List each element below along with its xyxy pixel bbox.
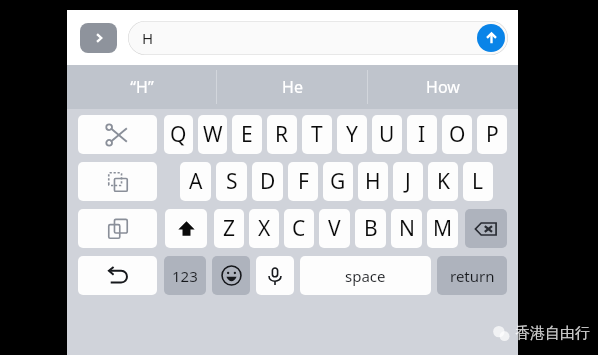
staticText: P: [486, 120, 499, 149]
staticText: 香港自由行: [515, 324, 590, 343]
button[interactable]: H: [128, 21, 508, 55]
button[interactable]: F: [288, 162, 318, 201]
button[interactable]: Backspace: [465, 209, 507, 248]
staticText: W: [203, 120, 223, 149]
button[interactable]: X: [249, 209, 279, 248]
staticText: H: [142, 28, 154, 48]
button[interactable]: L: [463, 162, 493, 201]
button[interactable]: Paste: [78, 209, 157, 248]
staticText: H: [365, 167, 381, 196]
button[interactable]: G: [323, 162, 353, 201]
button[interactable]: U: [372, 115, 402, 154]
staticText: F: [298, 167, 309, 196]
button[interactable]: Undo: [78, 256, 157, 295]
staticText: I: [418, 120, 426, 149]
staticText: A: [189, 167, 203, 196]
staticText: B: [364, 214, 378, 243]
button[interactable]: S: [216, 162, 247, 201]
staticText: L: [472, 167, 484, 196]
button[interactable]: W: [198, 115, 227, 154]
button[interactable]: V: [319, 209, 350, 248]
staticText: G: [330, 167, 346, 196]
staticText: Y: [346, 120, 358, 149]
staticText: K: [437, 167, 450, 196]
staticText: S: [226, 167, 238, 196]
staticText: E: [241, 120, 253, 149]
button[interactable]: Y: [337, 115, 367, 154]
button[interactable]: Copy: [78, 162, 157, 201]
button[interactable]: E: [232, 115, 262, 154]
staticText: N: [399, 214, 415, 243]
button[interactable]: D: [252, 162, 283, 201]
button[interactable]: Emoji: [212, 256, 250, 295]
button[interactable]: H: [358, 162, 388, 201]
button[interactable]: N: [391, 209, 422, 248]
button[interactable]: K: [428, 162, 458, 201]
button[interactable]: 123: [164, 256, 206, 295]
button[interactable]: Send: [477, 24, 505, 52]
button[interactable]: B: [355, 209, 386, 248]
button[interactable]: Cut: [78, 115, 157, 154]
button[interactable]: Dictation: [256, 256, 294, 295]
staticText: V: [328, 214, 341, 243]
button[interactable]: How: [368, 65, 518, 109]
button[interactable]: T: [302, 115, 332, 154]
button[interactable]: I: [407, 115, 437, 154]
staticText: R: [275, 120, 289, 149]
button[interactable]: R: [267, 115, 297, 154]
staticText: How: [426, 76, 460, 98]
button[interactable]: Shift: [165, 209, 207, 248]
staticText: 123: [172, 266, 198, 286]
staticText: space: [345, 266, 386, 286]
button[interactable]: O: [442, 115, 472, 154]
button[interactable]: J: [393, 162, 423, 201]
staticText: J: [405, 167, 411, 196]
staticText: D: [260, 167, 276, 196]
staticText: M: [433, 214, 453, 243]
button[interactable]: M: [427, 209, 458, 248]
staticText: He: [282, 76, 303, 98]
staticText: C: [292, 214, 306, 243]
staticText: “H”: [130, 76, 154, 98]
staticText: Z: [223, 214, 236, 243]
button[interactable]: return: [437, 256, 507, 295]
button[interactable]: Z: [214, 209, 244, 248]
button[interactable]: He: [217, 65, 367, 109]
staticText: X: [258, 214, 271, 243]
button[interactable]: Expand: [80, 23, 117, 53]
button[interactable]: space: [300, 256, 431, 295]
staticText: return: [450, 266, 495, 286]
staticText: Q: [170, 120, 187, 149]
staticText: U: [379, 120, 395, 149]
button[interactable]: “H”: [67, 65, 216, 109]
button[interactable]: P: [477, 115, 507, 154]
staticText: T: [311, 120, 323, 149]
button[interactable]: C: [284, 209, 314, 248]
button[interactable]: Q: [164, 115, 193, 154]
button[interactable]: A: [180, 162, 211, 201]
staticText: O: [449, 120, 466, 149]
